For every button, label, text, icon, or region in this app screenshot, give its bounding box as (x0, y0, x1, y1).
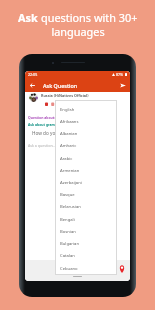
button[interactable]: Armenian (55, 165, 117, 177)
staticText: Afrikaans (60, 119, 79, 125)
staticText: Ask Question (43, 82, 78, 89)
staticText: questions with 30+ (41, 10, 138, 25)
staticText: Azerbaijani (60, 180, 82, 186)
button[interactable]: Cebuano (55, 263, 117, 275)
staticText: Bosnian (60, 229, 76, 235)
button[interactable]: Afrikaans (55, 116, 117, 128)
staticText: Ask a question... (28, 143, 56, 148)
staticText: How do you say this in (32, 130, 82, 136)
button[interactable]: Bengali (55, 214, 117, 226)
staticText: Ask about grammar (28, 122, 62, 127)
button[interactable]: Albanian (55, 128, 117, 140)
staticText: Ask (18, 10, 41, 25)
button[interactable]: Send (117, 80, 128, 91)
button[interactable]: Back (27, 80, 37, 90)
staticText: Arabic (60, 156, 73, 162)
button[interactable]: Catalan (55, 250, 117, 262)
staticText: Cebuano (60, 266, 78, 272)
button[interactable]: Amharic (55, 140, 117, 152)
button[interactable]: Azerbaijani (55, 177, 117, 189)
staticText: Belarusian (60, 204, 81, 210)
staticText: Albanian (60, 131, 78, 137)
staticText: languages (51, 24, 105, 39)
staticText: English (60, 107, 75, 113)
staticText: Question about: (28, 115, 56, 120)
button[interactable]: Arabic (55, 153, 117, 165)
staticText: Catalan (60, 253, 75, 259)
button[interactable]: Basque (55, 189, 117, 201)
button[interactable]: English (55, 104, 117, 116)
staticText: Bulgarian (60, 241, 80, 247)
button[interactable]: Bosnian (55, 226, 117, 238)
button[interactable]: Belarusian (55, 201, 117, 213)
staticText: 22:05 (28, 72, 38, 77)
staticText: Amharic (60, 143, 77, 149)
staticText: Bengali (60, 217, 75, 223)
staticText: Armenian (60, 168, 80, 174)
staticText: Basque (60, 192, 75, 198)
staticText: 87% (116, 72, 124, 77)
staticText: Russia (HiNatives Official) (41, 93, 89, 98)
button[interactable]: Bulgarian (55, 238, 117, 250)
